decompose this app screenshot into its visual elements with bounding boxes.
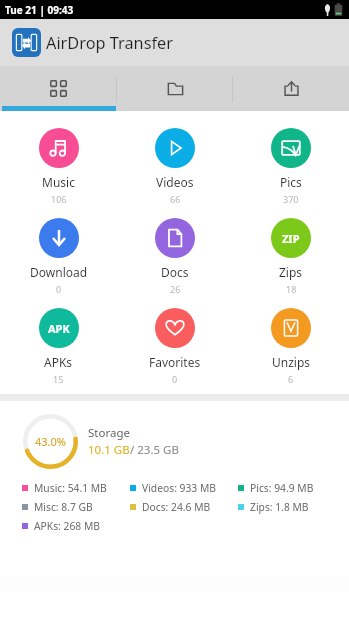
staticText: 43.0% <box>35 434 66 449</box>
staticText: 6 <box>288 373 294 385</box>
button[interactable]: Favorites <box>117 308 233 394</box>
button[interactable]: Pics <box>233 128 349 218</box>
staticText: Music <box>42 174 75 190</box>
staticText: 26 <box>170 283 181 295</box>
button[interactable]: Docs <box>117 218 233 308</box>
staticText: Zips <box>279 264 303 280</box>
staticText: Favorites <box>149 354 201 370</box>
staticText: 18 <box>286 283 297 295</box>
staticText: 106 <box>51 193 67 205</box>
staticText: Docs <box>161 264 189 280</box>
staticText: ZIP <box>282 231 300 246</box>
button[interactable]: APK <box>0 308 117 394</box>
button[interactable]: ZIP <box>233 218 349 308</box>
staticText: Zips: 1.8 MB <box>250 500 309 514</box>
button[interactable]: Share <box>233 66 349 111</box>
staticText: Storage <box>88 425 130 441</box>
button[interactable]: Music <box>0 128 117 218</box>
staticText: 10.1 GB <box>88 442 130 458</box>
button[interactable]: Unzips <box>233 308 349 394</box>
staticText: Misc: 8.7 GB <box>34 500 93 514</box>
staticText: APKs: 268 MB <box>34 519 100 533</box>
button[interactable]: Grid view <box>0 66 117 111</box>
staticText: Unzips <box>272 354 311 370</box>
staticText: Docs: 24.6 MB <box>142 500 211 514</box>
staticText: Pics <box>280 174 302 190</box>
button[interactable]: Folders <box>117 66 233 111</box>
staticText: APK <box>48 321 70 336</box>
staticText: Videos <box>156 174 194 190</box>
staticText: 0 <box>56 283 62 295</box>
button[interactable]: Download <box>0 218 117 308</box>
staticText: Pics: 94.9 MB <box>250 481 314 495</box>
staticText: 66 <box>170 193 181 205</box>
staticText: AirDrop Transfer <box>46 32 173 54</box>
staticText: Videos: 933 MB <box>142 481 216 495</box>
staticText: 370 <box>283 193 299 205</box>
staticText: Music: 54.1 MB <box>34 481 107 495</box>
staticText: Download <box>30 264 88 280</box>
staticText: APKs <box>44 354 73 370</box>
staticText: 15 <box>53 373 64 385</box>
button[interactable]: Videos <box>117 128 233 218</box>
staticText: Tue 21 | 09:43 <box>5 3 74 17</box>
staticText: / 23.5 GB <box>130 442 179 458</box>
staticText: 0 <box>172 373 178 385</box>
